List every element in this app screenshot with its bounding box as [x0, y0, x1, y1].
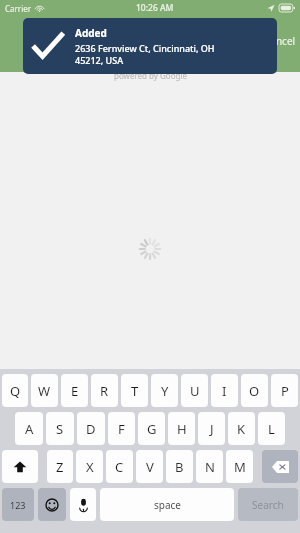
- button[interactable]: N: [196, 450, 223, 483]
- button[interactable]: W: [31, 374, 58, 407]
- staticText: J: [210, 420, 214, 438]
- staticText: L: [268, 420, 275, 438]
- staticText: 45212, USA: [75, 54, 124, 66]
- button[interactable]: 123: [2, 488, 34, 521]
- staticText: H: [177, 420, 187, 438]
- button[interactable]: M: [226, 450, 253, 483]
- staticText: V: [146, 458, 154, 476]
- button[interactable]: U: [181, 374, 208, 407]
- button[interactable]: Shift: [2, 450, 38, 483]
- staticText: Y: [161, 382, 169, 400]
- staticText: N: [205, 458, 215, 476]
- staticText: 2636 Fernview Ct, Cincinnati, OH: [75, 42, 215, 54]
- staticText: O: [249, 382, 260, 400]
- staticText: Added: [75, 26, 107, 40]
- button[interactable]: K: [228, 412, 255, 445]
- staticText: P: [281, 382, 289, 400]
- button[interactable]: L: [258, 412, 285, 445]
- button[interactable]: P: [271, 374, 298, 407]
- button[interactable]: R: [91, 374, 118, 407]
- button[interactable]: I: [211, 374, 238, 407]
- staticText: 123: [10, 499, 26, 511]
- button[interactable]: O: [241, 374, 268, 407]
- button[interactable]: G: [138, 412, 165, 445]
- button[interactable]: Z: [47, 450, 73, 483]
- button[interactable]: H: [168, 412, 195, 445]
- button[interactable]: Backspace: [262, 450, 298, 483]
- staticText: W: [38, 382, 51, 400]
- staticText: X: [86, 458, 94, 476]
- button[interactable]: A: [15, 412, 43, 445]
- button[interactable]: X: [76, 450, 103, 483]
- staticText: T: [131, 382, 139, 400]
- staticText: D: [86, 420, 96, 438]
- button[interactable]: Search: [238, 488, 298, 521]
- staticText: Q: [10, 382, 21, 400]
- button[interactable]: space: [100, 488, 234, 521]
- button[interactable]: Dictate: [70, 488, 96, 521]
- staticText: M: [234, 458, 246, 476]
- staticText: S: [56, 420, 64, 438]
- staticText: C: [115, 458, 124, 476]
- staticText: A: [25, 420, 34, 438]
- button[interactable]: C: [106, 450, 133, 483]
- button[interactable]: D: [77, 412, 105, 445]
- button[interactable]: Y: [151, 374, 178, 407]
- staticText: G: [147, 420, 157, 438]
- button[interactable]: S: [46, 412, 74, 445]
- button[interactable]: Q: [2, 374, 28, 407]
- staticText: Carrier: [5, 3, 32, 14]
- staticText: space: [154, 498, 181, 512]
- button[interactable]: E: [61, 374, 88, 407]
- button[interactable]: V: [136, 450, 163, 483]
- staticText: B: [175, 458, 184, 476]
- button[interactable]: Added: [23, 18, 277, 74]
- button[interactable]: B: [166, 450, 193, 483]
- staticText: Search: [252, 498, 284, 512]
- staticText: 10:26 AM: [136, 2, 174, 14]
- staticText: U: [190, 382, 200, 400]
- staticText: E: [71, 382, 79, 400]
- staticText: F: [118, 420, 125, 438]
- button[interactable]: T: [121, 374, 148, 407]
- button[interactable]: F: [108, 412, 135, 445]
- staticText: K: [237, 420, 246, 438]
- button[interactable]: J: [198, 412, 225, 445]
- staticText: I: [222, 382, 227, 400]
- button[interactable]: Emoji: [38, 488, 66, 521]
- staticText: powered by Google: [114, 70, 187, 81]
- staticText: Z: [56, 458, 64, 476]
- staticText: R: [100, 382, 109, 400]
- button[interactable]: Cancel: [264, 34, 296, 48]
